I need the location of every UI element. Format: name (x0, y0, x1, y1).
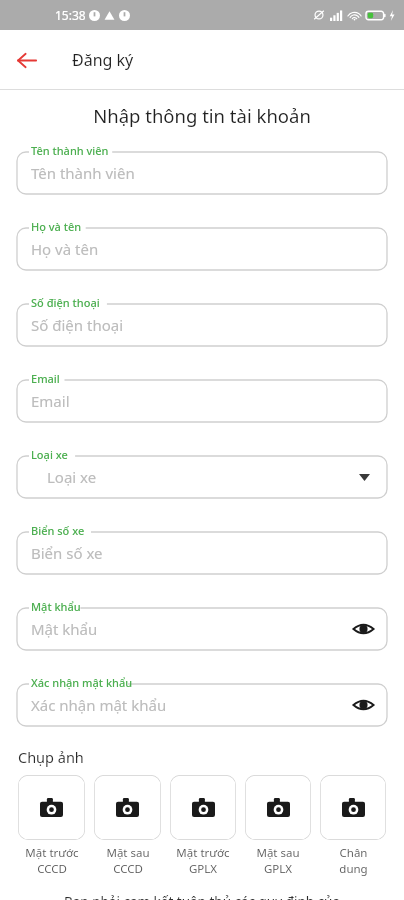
staticText: 15:38 (55, 7, 86, 23)
staticText: Mặt sau CCCD (106, 845, 150, 876)
staticText: Nhập thông tin tài khoản (0, 103, 404, 128)
staticText: Email (31, 371, 60, 386)
staticText: Họ và tên (31, 239, 99, 259)
button[interactable]: Open dropdown (354, 467, 374, 487)
staticText: Tên thành viên (31, 163, 135, 183)
staticText: Email (31, 391, 70, 411)
staticText: Xác nhận mật khẩu (31, 695, 167, 715)
staticText: Tên thành viên (31, 143, 109, 158)
staticText: Biển số xe (31, 523, 85, 538)
staticText: Bạn phải cam kết tuân thủ các quy định c… (10, 893, 394, 900)
staticText: Mặt trước GPLX (176, 845, 230, 876)
button[interactable]: Xác nhận mật khẩu (17, 684, 387, 726)
staticText: Xác nhận mật khẩu (31, 675, 133, 690)
staticText: Chân dung (339, 845, 368, 876)
button[interactable]: Loại xe (17, 456, 387, 498)
button[interactable]: Số điện thoại (17, 304, 387, 346)
button[interactable]: Biển số xe (17, 532, 387, 574)
staticText: Biển số xe (31, 543, 103, 563)
staticText: Số điện thoại (31, 295, 100, 310)
staticText: Loại xe (31, 447, 68, 462)
button[interactable]: Take photo: Mặt trước GPLX (170, 775, 236, 840)
staticText: Mật khẩu (31, 619, 98, 639)
staticText: Họ và tên (31, 219, 82, 234)
button[interactable]: Họ và tên (17, 228, 387, 270)
button[interactable]: Back (0, 34, 52, 86)
button[interactable]: Tên thành viên (17, 152, 387, 194)
staticText: Mặt sau GPLX (256, 845, 300, 876)
button[interactable]: Email (17, 380, 387, 422)
staticText: Mặt trước CCCD (25, 845, 79, 876)
staticText: Loại xe (47, 467, 97, 487)
button[interactable]: Take photo: Chân dung (320, 775, 386, 840)
button[interactable]: Show password (350, 692, 376, 718)
staticText: Số điện thoại (31, 315, 124, 335)
button[interactable]: Take photo: Mặt sau CCCD (94, 775, 161, 840)
button[interactable]: Show password (350, 616, 376, 642)
staticText: Chụp ảnh (18, 747, 84, 767)
staticText: Đăng ký (72, 49, 134, 71)
button[interactable]: Take photo: Mặt trước CCCD (18, 775, 85, 840)
button[interactable]: Take photo: Mặt sau GPLX (245, 775, 311, 840)
button[interactable]: Mật khẩu (17, 608, 387, 650)
staticText: Mật khẩu (31, 599, 81, 614)
